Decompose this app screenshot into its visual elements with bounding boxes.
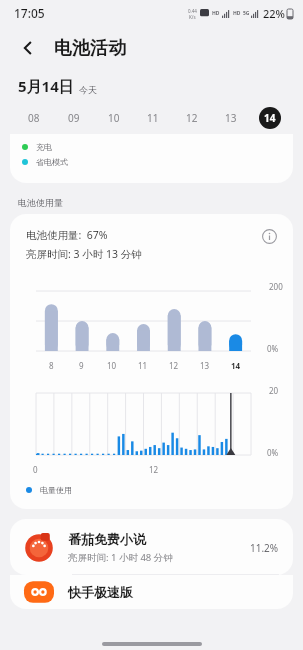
staticText: 5G xyxy=(243,10,250,17)
staticText: 13 xyxy=(225,111,237,125)
button[interactable]: 13 xyxy=(211,103,250,133)
button[interactable]: 09 xyxy=(54,103,94,133)
staticText: 8 xyxy=(49,360,54,371)
button[interactable]: 番茄免费小说 xyxy=(10,519,293,575)
staticText: 09 xyxy=(68,111,80,125)
staticText: 10 xyxy=(108,111,120,125)
staticText: 亮屏时间: 1 小时 48 分钟 xyxy=(68,551,173,564)
staticText: 22% xyxy=(263,6,285,21)
staticText: 11 xyxy=(147,111,159,125)
button[interactable]: 14 xyxy=(250,103,289,133)
staticText: 快手极速版 xyxy=(68,584,133,600)
staticText: K/s xyxy=(189,14,196,20)
staticText: 9 xyxy=(79,360,84,371)
button[interactable]: 11 xyxy=(133,103,172,133)
staticText: 0% xyxy=(267,343,279,354)
staticText: 5月14日 xyxy=(18,76,74,96)
staticText: 0 xyxy=(33,464,38,475)
staticText: 17:05 xyxy=(14,5,45,21)
staticText: 12 xyxy=(169,360,179,371)
button[interactable]: 快手极速版 xyxy=(10,575,293,609)
button[interactable]: Info xyxy=(257,224,281,248)
staticText: 10 xyxy=(107,360,117,371)
staticText: 电池使用量 xyxy=(18,197,63,208)
staticText: 200 xyxy=(269,281,283,292)
staticText: 0% xyxy=(267,447,279,458)
staticText: 省电模式 xyxy=(36,157,68,167)
staticText: 番茄免费小说 xyxy=(68,531,146,547)
staticText: 08 xyxy=(28,111,40,125)
staticText: 充电 xyxy=(36,142,52,152)
button[interactable]: 10 xyxy=(94,103,133,133)
staticText: 12 xyxy=(149,464,159,475)
staticText: 亮屏时间: 3 小时 13 分钟 xyxy=(26,247,142,261)
staticText: 14 xyxy=(264,111,276,125)
staticText: 11 xyxy=(138,360,148,371)
staticText: 14 xyxy=(231,360,241,371)
staticText: HD xyxy=(233,10,241,17)
staticText: 11.2% xyxy=(250,541,279,555)
staticText: 电量使用 xyxy=(40,485,72,495)
staticText: 今天 xyxy=(79,84,97,95)
button[interactable]: Back xyxy=(12,32,44,64)
staticText: HD xyxy=(212,10,220,17)
staticText: 电池活动 xyxy=(54,37,126,60)
staticText: 电池使用量: 67% xyxy=(26,228,108,242)
button[interactable]: 电池使用量: 67% xyxy=(10,214,293,261)
staticText: 20 xyxy=(269,385,279,396)
staticText: 12 xyxy=(186,111,198,125)
staticText: 13 xyxy=(200,360,210,371)
button[interactable]: 12 xyxy=(172,103,211,133)
staticText: 0.44 xyxy=(188,8,197,14)
button[interactable]: 08 xyxy=(14,103,54,133)
